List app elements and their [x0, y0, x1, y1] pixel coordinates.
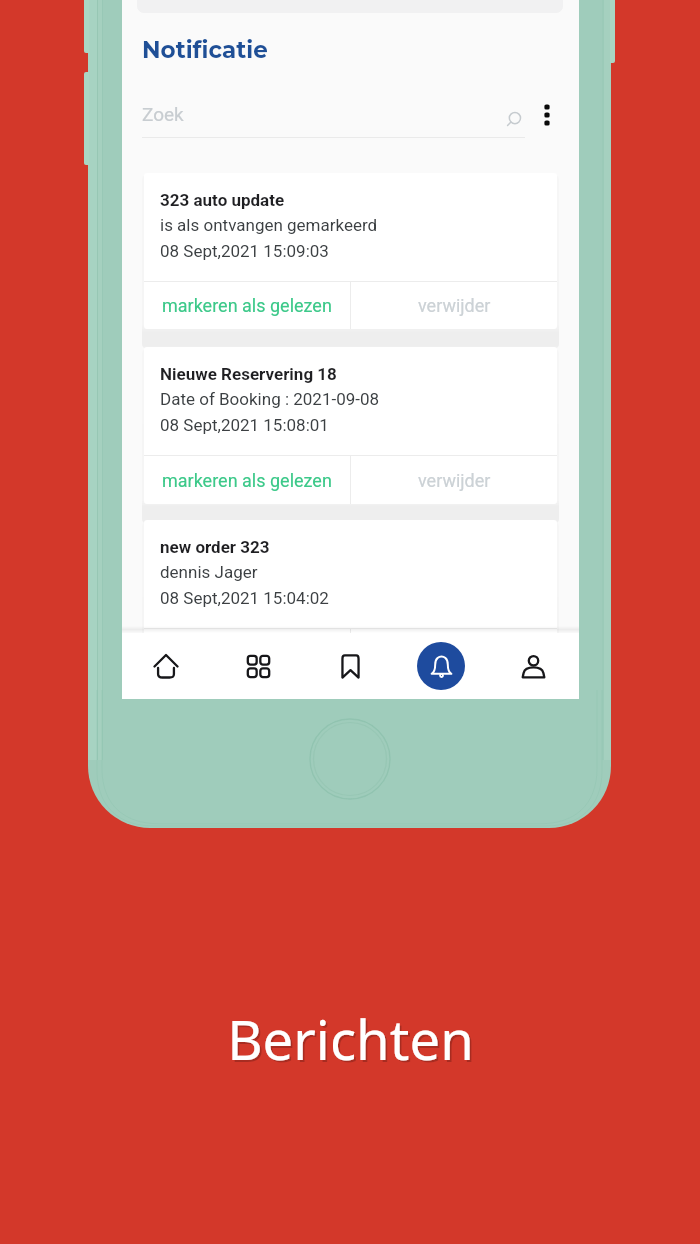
staticText: verwijder [418, 642, 491, 663]
button[interactable]: verwijder [351, 629, 557, 676]
staticText: verwijder [418, 295, 491, 316]
button[interactable]: Dashboard [236, 644, 280, 688]
button[interactable]: markeren als gelezen [144, 629, 350, 676]
button[interactable]: More options [531, 99, 563, 131]
staticText: 08 Sept,2021 15:09:03 [160, 241, 329, 261]
staticText: is als ontvangen gemarkeerd [160, 215, 378, 235]
staticText: Nieuwe Reservering 18 [160, 364, 337, 384]
button[interactable]: Bookmarks [328, 644, 372, 688]
staticText: dennis Jager [160, 562, 258, 582]
button[interactable]: Search [497, 104, 529, 136]
button[interactable]: Nieuwe Reservering 18 [144, 347, 557, 504]
button[interactable]: Notifications [417, 642, 465, 690]
staticText: Berichten [229, 1004, 476, 1078]
staticText: Notificatie [142, 36, 268, 64]
button[interactable]: Home [144, 644, 188, 688]
staticText: Berichten [227, 1002, 474, 1076]
staticText: markeren als gelezen [162, 642, 332, 663]
button[interactable]: markeren als gelezen [144, 456, 350, 504]
staticText: 08 Sept,2021 15:04:02 [160, 588, 329, 608]
staticText: markeren als gelezen [162, 470, 332, 491]
button[interactable]: markeren als gelezen [144, 282, 350, 329]
staticText: 08 Sept,2021 15:08:01 [160, 415, 329, 435]
staticText: new order 323 [160, 537, 270, 557]
staticText: markeren als gelezen [162, 295, 332, 316]
staticText: Date of Booking : 2021-09-08 [160, 389, 380, 409]
button[interactable]: 323 auto update [144, 173, 557, 329]
staticText: Zoek [142, 103, 184, 125]
button[interactable]: verwijder [351, 456, 557, 504]
button[interactable]: new order 323 [144, 520, 557, 676]
staticText: verwijder [418, 470, 491, 491]
button[interactable]: verwijder [351, 282, 557, 329]
button[interactable]: Profile [511, 644, 555, 688]
staticText: 323 auto update [160, 190, 285, 210]
